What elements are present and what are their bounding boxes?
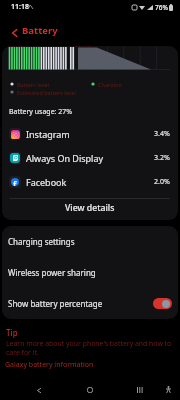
button[interactable]: Accessibility [158,379,178,400]
staticText: Learn more about your phone's battery an… [6,339,172,357]
staticText: 12 PM [75,46,92,48]
staticText: f [13,179,17,186]
staticText: View details [65,202,115,214]
button[interactable]: Back [26,380,52,400]
staticText: 3.4% [154,129,170,139]
button[interactable]: Charging settings [2,226,178,257]
button[interactable]: Navigate up [3,21,25,45]
staticText: Facebook [26,176,67,188]
button[interactable]: View details [2,198,178,218]
button[interactable]: Always On Display [2,146,178,170]
button[interactable]: Recent apps [127,380,153,400]
staticText: 12 AM [8,46,25,48]
staticText: Instagram [26,128,70,140]
button[interactable]: Home [77,380,103,400]
staticText: Battery level [17,81,49,87]
staticText: 2.0% [154,177,170,187]
staticText: Estimated battery level [17,89,76,95]
button[interactable]: Show battery percentage [2,288,178,319]
staticText: Battery usage: 27% [9,107,73,117]
staticText: Show battery percentage [8,298,103,309]
staticText: Charging settings [8,236,75,247]
button[interactable]: Wireless power sharing [2,257,178,288]
staticText: Battery [22,24,58,37]
button[interactable]: f [2,170,178,194]
staticText: Wireless power sharing [8,267,96,278]
staticText: Tip [6,327,18,338]
staticText: 3.2% [154,153,170,163]
staticText: 11:18 [11,2,29,12]
button[interactable]: Instagram [2,122,178,146]
button[interactable]: Galaxy battery information [5,360,94,370]
staticText: 76% [155,3,168,12]
staticText: Always On Display [26,152,104,164]
staticText: Charging [98,81,122,87]
